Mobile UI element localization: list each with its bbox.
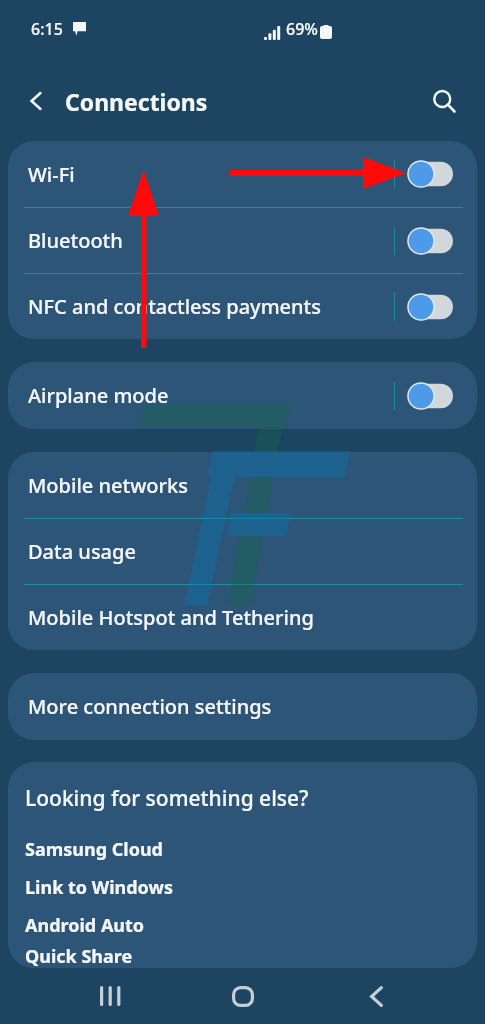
staticText: Android Auto: [25, 913, 145, 938]
staticText: Wi-Fi: [28, 161, 75, 188]
staticText: Samsung Cloud: [25, 837, 163, 862]
button[interactable]: Mobile networks: [8, 452, 477, 518]
button[interactable]: Home: [219, 972, 267, 1020]
button[interactable]: NFC and contactless payments: [8, 274, 477, 339]
button[interactable]: More connection settings: [8, 673, 477, 740]
button[interactable]: Quick Share: [25, 944, 477, 968]
staticText: Mobile Hotspot and Tethering: [28, 604, 314, 631]
staticText: 69%: [286, 18, 318, 40]
button[interactable]: Recents: [85, 972, 133, 1020]
button[interactable]: Data usage: [8, 519, 477, 584]
button[interactable]: Bluetooth: [8, 208, 477, 273]
staticText: Looking for something else?: [25, 784, 309, 813]
staticText: NFC and contactless payments: [28, 293, 321, 320]
staticText: 6:15: [31, 18, 63, 40]
button[interactable]: Mobile Hotspot and Tethering: [8, 585, 477, 650]
button[interactable]: Airplane mode: [8, 362, 477, 429]
button[interactable]: Samsung Cloud: [25, 830, 477, 868]
staticText: Quick Share: [25, 944, 133, 968]
button[interactable]: Wi-Fi: [8, 141, 477, 207]
button[interactable]: Toggle: [407, 226, 453, 256]
button[interactable]: Back: [18, 83, 54, 119]
button[interactable]: Toggle: [407, 159, 453, 189]
button[interactable]: Android Auto: [25, 906, 477, 944]
staticText: Bluetooth: [28, 227, 123, 254]
staticText: Airplane mode: [28, 382, 169, 409]
button[interactable]: Search: [425, 82, 463, 120]
staticText: Connections: [65, 86, 208, 117]
button[interactable]: Link to Windows: [25, 868, 477, 906]
button[interactable]: Toggle: [407, 292, 453, 322]
button[interactable]: Back: [352, 972, 400, 1020]
staticText: More connection settings: [28, 693, 272, 720]
staticText: Mobile networks: [28, 472, 188, 499]
staticText: Data usage: [28, 538, 136, 565]
staticText: Link to Windows: [25, 875, 173, 900]
button[interactable]: Toggle: [407, 381, 453, 411]
